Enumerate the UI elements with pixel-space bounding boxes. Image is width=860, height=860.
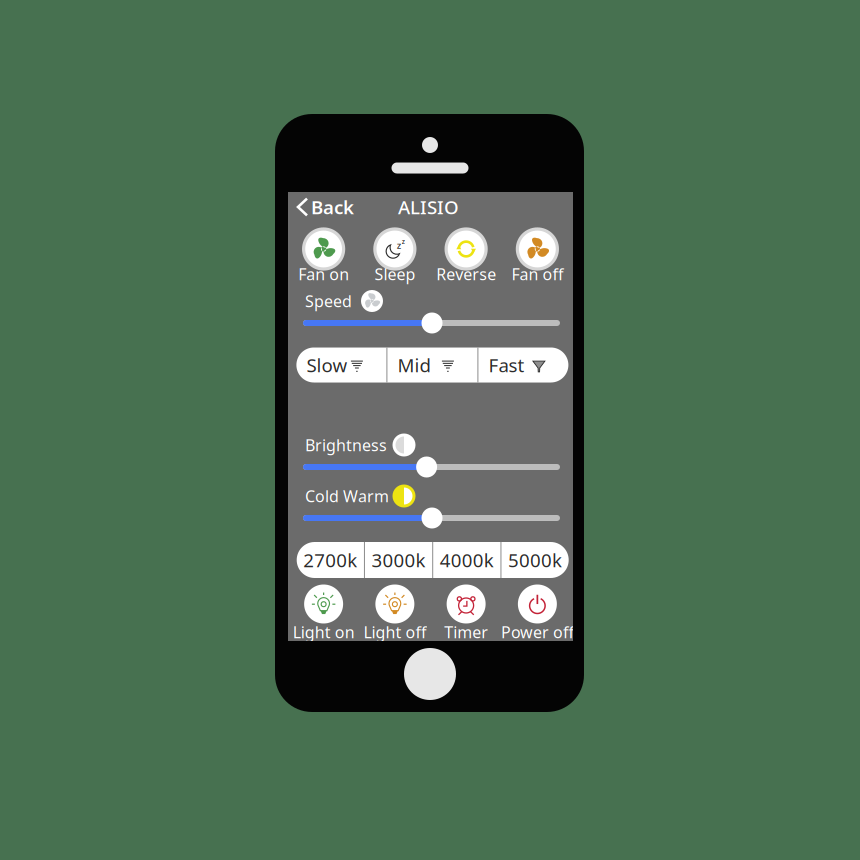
staticText: 4000k: [440, 548, 494, 572]
staticText: ALISIO: [398, 195, 459, 219]
staticText: 2700k: [303, 548, 357, 572]
button[interactable]: Fan off: [502, 224, 573, 288]
button[interactable]: Back: [292, 194, 358, 220]
staticText: Fast: [488, 353, 524, 377]
staticText: Power off: [501, 621, 574, 643]
button[interactable]: Mid: [387, 347, 477, 382]
button[interactable]: Fast: [478, 347, 568, 382]
staticText: Timer: [444, 621, 488, 643]
button[interactable]: 4000k: [433, 542, 500, 578]
button[interactable]: Slow: [296, 347, 386, 382]
staticText: Slow: [306, 353, 347, 377]
button[interactable]: Light off: [359, 579, 430, 643]
staticText: Light off: [363, 621, 426, 643]
button[interactable]: Power off: [502, 579, 573, 643]
staticText: Brightness: [305, 434, 387, 456]
staticText: Speed: [305, 290, 352, 312]
staticText: Sleep: [374, 263, 415, 285]
button[interactable]: Fan on: [288, 224, 359, 288]
staticText: Fan on: [298, 263, 349, 285]
button[interactable]: 5000k: [501, 542, 569, 578]
staticText: z: [397, 239, 401, 251]
staticText: 3000k: [372, 548, 426, 572]
staticText: Back: [311, 195, 354, 219]
button[interactable]: 3000k: [365, 542, 432, 578]
staticText: Fan off: [511, 263, 563, 285]
staticText: Cold Warm: [305, 485, 389, 507]
staticText: z: [402, 237, 405, 246]
button[interactable]: 2700k: [297, 542, 364, 578]
button[interactable]: z: [359, 224, 430, 288]
button[interactable]: Light on: [288, 579, 359, 643]
button[interactable]: Timer: [430, 579, 502, 643]
button[interactable]: Reverse: [430, 224, 502, 288]
staticText: Mid: [397, 353, 430, 377]
staticText: Reverse: [436, 263, 496, 285]
staticText: Light on: [293, 621, 355, 643]
staticText: 5000k: [508, 548, 562, 572]
